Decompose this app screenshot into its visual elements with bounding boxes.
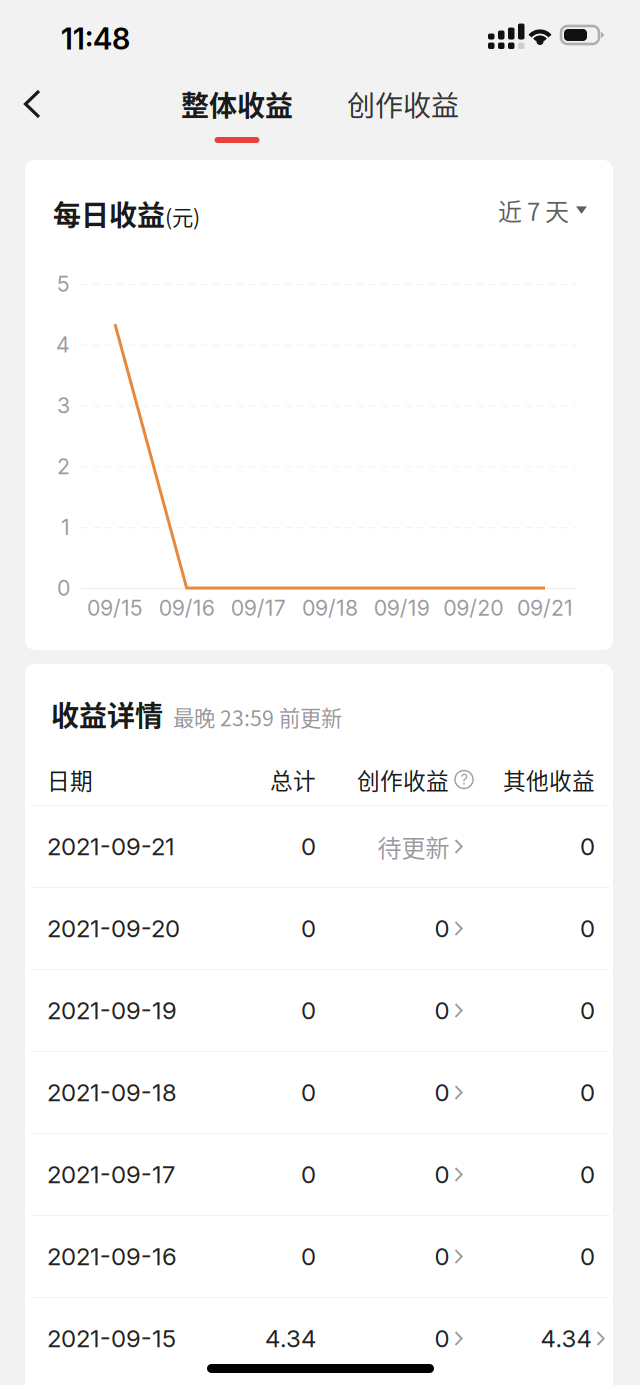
staticText: 09/19 xyxy=(374,595,430,621)
staticText: 3 xyxy=(57,393,70,418)
staticText: 2021-09-15 xyxy=(47,1324,176,1353)
staticText: 09/18 xyxy=(302,595,358,621)
staticText: ? xyxy=(460,771,467,788)
staticText: 4 xyxy=(56,332,70,358)
staticText: 创作收益 xyxy=(347,84,459,124)
staticText: 收益详情 xyxy=(51,694,163,734)
staticText: 09/17 xyxy=(231,595,286,621)
button[interactable]: 2021-09-18 xyxy=(25,1052,613,1133)
staticText: 0 xyxy=(301,1160,316,1189)
staticText: 2 xyxy=(57,453,70,479)
staticText: 4.34 xyxy=(265,1324,316,1353)
staticText: 2021-09-21 xyxy=(47,832,175,861)
staticText: (元) xyxy=(165,201,200,232)
staticText: 创作收益 xyxy=(357,763,449,796)
staticText: 2021-09-19 xyxy=(47,996,177,1025)
staticText: 0 xyxy=(301,1242,316,1271)
staticText: 整体收益 xyxy=(181,84,293,124)
staticText: 2021-09-17 xyxy=(47,1160,175,1189)
button[interactable]: 2021-09-17 xyxy=(25,1134,613,1215)
staticText: 日期 xyxy=(47,763,93,796)
staticText: 0 xyxy=(57,575,70,601)
staticText: 0 xyxy=(301,996,316,1025)
button[interactable]: 2021-09-15 xyxy=(25,1298,613,1379)
staticText: 0 xyxy=(434,1242,449,1271)
staticText: 其他收益 xyxy=(503,763,595,796)
button[interactable]: 2021-09-20 xyxy=(25,888,613,969)
staticText: 11:48 xyxy=(61,21,130,56)
staticText: 5 xyxy=(57,271,70,297)
staticText: 09/16 xyxy=(159,595,215,621)
staticText: 4.34 xyxy=(540,1324,591,1353)
staticText: 0 xyxy=(580,996,595,1025)
staticText: 2021-09-16 xyxy=(47,1242,177,1271)
staticText: 0 xyxy=(434,914,449,943)
staticText: 0 xyxy=(301,832,316,861)
button[interactable]: 创作收益 xyxy=(335,80,471,151)
button[interactable]: 2021-09-16 xyxy=(25,1216,613,1297)
button[interactable]: 2021-09-19 xyxy=(25,970,613,1051)
staticText: 总计 xyxy=(270,763,316,796)
staticText: 0 xyxy=(301,1078,316,1107)
button[interactable]: 近 7 天 xyxy=(488,187,587,234)
staticText: 2021-09-20 xyxy=(47,914,180,943)
staticText: 0 xyxy=(580,1160,595,1189)
staticText: 待更新 xyxy=(377,829,449,864)
button[interactable]: Back xyxy=(6,73,58,135)
staticText: 0 xyxy=(580,1078,595,1107)
staticText: 0 xyxy=(434,1078,449,1107)
staticText: 每日收益 xyxy=(53,193,165,234)
staticText: 09/15 xyxy=(87,595,143,621)
staticText: 1 xyxy=(61,514,70,540)
button[interactable]: 2021-09-21 xyxy=(25,806,613,887)
staticText: 0 xyxy=(580,914,595,943)
staticText: 2021-09-18 xyxy=(47,1078,177,1107)
staticText: 0 xyxy=(580,832,595,861)
staticText: 近 7 天 xyxy=(498,193,569,228)
button[interactable]: 整体收益 xyxy=(169,80,305,151)
staticText: 最晚 23:59 前更新 xyxy=(173,701,342,732)
staticText: 09/21 xyxy=(517,595,573,621)
staticText: 09/20 xyxy=(443,595,503,621)
staticText: 0 xyxy=(580,1242,595,1271)
staticText: 0 xyxy=(434,996,449,1025)
staticText: 0 xyxy=(434,1324,449,1353)
staticText: 0 xyxy=(434,1160,449,1189)
staticText: 0 xyxy=(301,914,316,943)
